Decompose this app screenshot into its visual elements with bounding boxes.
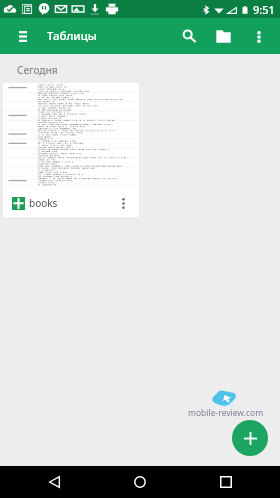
button[interactable]: Home — [124, 466, 156, 498]
button[interactable]: books — [3, 83, 139, 217]
button[interactable]: Create new spreadsheet — [232, 420, 268, 456]
button[interactable]: Folders — [209, 22, 238, 51]
button[interactable]: Search — [175, 22, 204, 51]
button[interactable]: Back — [38, 466, 70, 498]
button[interactable]: More options — [244, 22, 273, 51]
button[interactable]: Menu — [8, 22, 37, 51]
staticText: Таблицы — [47, 28, 97, 44]
button[interactable]: Item options — [111, 191, 135, 215]
staticText: books — [29, 196, 58, 210]
staticText: 9:51 — [253, 2, 275, 17]
staticText: Сегодня — [17, 63, 58, 77]
button[interactable]: Recents — [210, 466, 242, 498]
staticText: mobile-review.com — [188, 407, 264, 419]
